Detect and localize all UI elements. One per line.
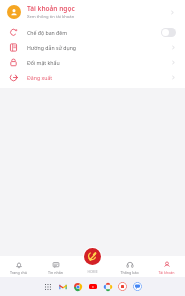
button[interactable]: YouTube (88, 282, 97, 291)
button[interactable]: Đăng xuất (0, 70, 185, 85)
button[interactable]: Tin nhắn (37, 256, 74, 277)
button[interactable]: Đổi mật khẩu (0, 55, 185, 70)
staticText: Tài khoản (158, 270, 175, 275)
button[interactable]: Trang chủ (0, 256, 37, 277)
button[interactable]: Gmail (58, 282, 67, 291)
button[interactable]: Chrome (73, 282, 82, 291)
button[interactable]: App (133, 282, 142, 291)
staticText: Hướng dẫn sử dụng (27, 44, 171, 51)
staticText: Tin nhắn (48, 270, 63, 275)
staticText: Đăng xuất (27, 74, 171, 81)
staticText: Xem thông tin tài khoản (27, 14, 75, 20)
staticText: Chế độ ban đêm (27, 29, 161, 36)
staticText: Tài khoản ngọc (27, 4, 75, 13)
button[interactable]: Chế độ ban đêm (0, 25, 185, 40)
staticText: Thông báo (120, 270, 139, 275)
button[interactable]: All apps (43, 282, 52, 291)
button[interactable]: Tài khoản (148, 256, 185, 277)
button[interactable]: Hướng dẫn sử dụng (0, 40, 185, 55)
button[interactable]: Chi tiết tài khoản (166, 6, 178, 18)
staticText: Trang chủ (10, 270, 27, 275)
button[interactable]: Trang chính (84, 248, 101, 265)
staticText: Đổi mật khẩu (27, 59, 171, 66)
button[interactable]: App (118, 282, 127, 291)
button[interactable]: Thông báo (111, 256, 148, 277)
button[interactable]: Tài khoản ngọc (0, 0, 185, 24)
button[interactable]: Photos (103, 282, 112, 291)
button[interactable]: Chế độ ban đêm (161, 28, 176, 37)
staticText: HOME (87, 269, 98, 274)
